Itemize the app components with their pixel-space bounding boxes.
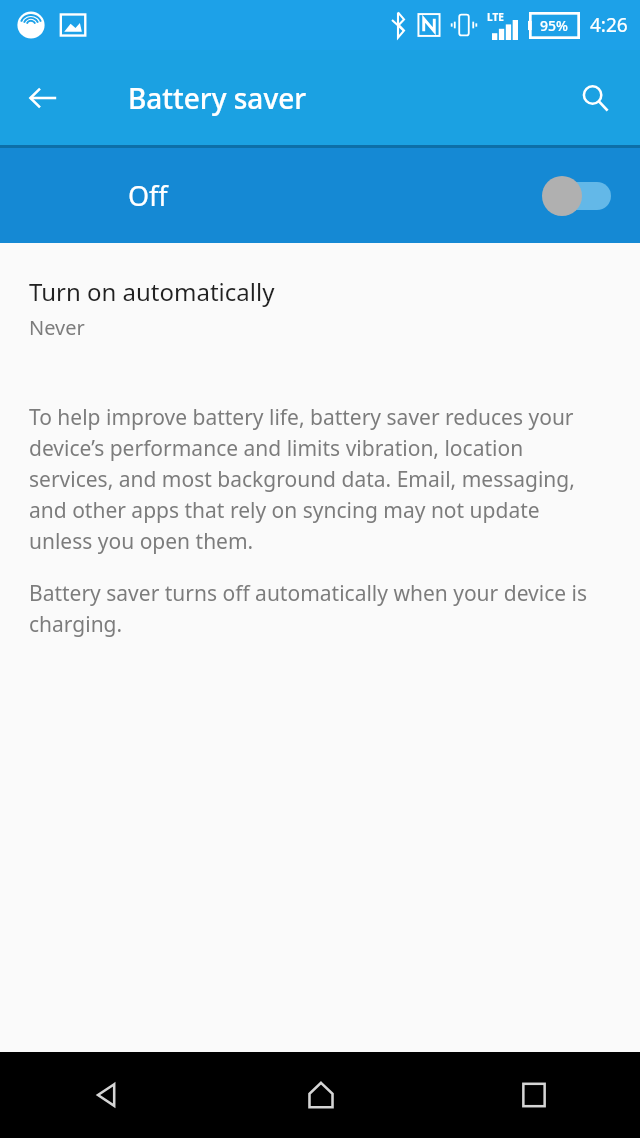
staticText: Never [29,314,85,341]
button[interactable]: Recent apps [427,1052,640,1138]
button[interactable]: Off [0,148,640,243]
staticText: Turn on automatically [29,275,275,308]
staticText: Battery saver turns off automatically wh… [29,579,608,638]
staticText: Battery saver [128,79,307,117]
button[interactable]: Search [564,67,626,129]
staticText: 4:26 [590,12,628,38]
button[interactable]: Back [12,67,74,129]
button[interactable]: Back [0,1052,214,1138]
staticText: Off [128,177,168,214]
button[interactable]: Home [214,1052,427,1138]
button[interactable]: Turn on automatically [29,275,608,341]
staticText: 95% [540,16,568,35]
staticText: LTE [487,10,504,24]
staticText: To help improve battery life, battery sa… [29,403,608,555]
